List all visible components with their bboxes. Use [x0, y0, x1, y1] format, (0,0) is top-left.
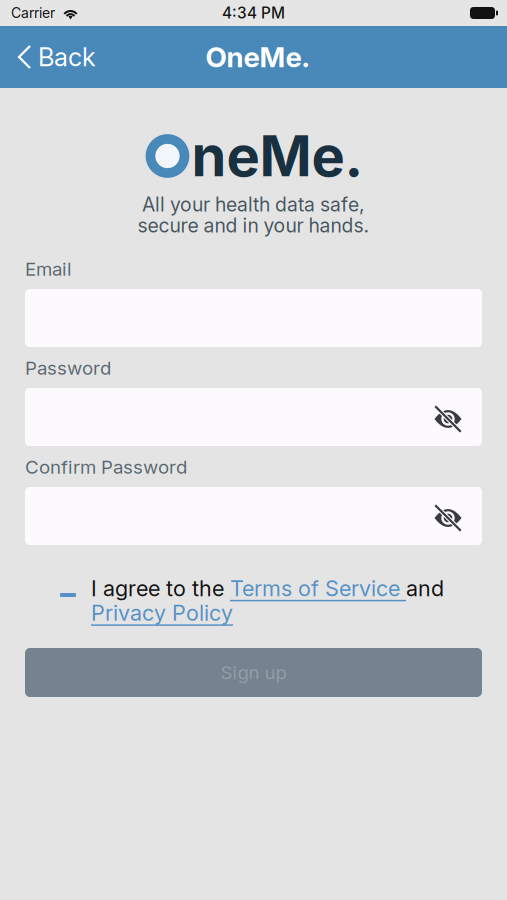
staticText: Back [38, 42, 96, 72]
button[interactable]: Sign up [25, 648, 482, 697]
button[interactable]: Back [0, 26, 110, 88]
button[interactable]: Terms of Service [230, 575, 406, 601]
staticText: OneMe. [205, 40, 309, 74]
staticText: Terms of Service [230, 575, 406, 601]
button[interactable]: Show password [422, 388, 482, 446]
staticText: 4:34 PM [222, 4, 285, 22]
staticText: Password [25, 357, 111, 379]
button[interactable]: Show password [422, 487, 482, 545]
staticText: I agree to the [91, 575, 230, 601]
staticText: Email [25, 258, 72, 280]
staticText: Confirm Password [25, 456, 187, 478]
button[interactable]: Privacy Policy [91, 601, 233, 625]
staticText: All your health data safe, [142, 193, 365, 216]
staticText: secure and in your hands. [137, 214, 369, 237]
staticText: and [406, 575, 444, 601]
button[interactable]: Agree to terms [25, 576, 91, 614]
staticText: Carrier [11, 4, 55, 21]
staticText: Sign up [220, 661, 286, 684]
staticText: neMe. [191, 122, 363, 190]
staticText: Privacy Policy [91, 600, 233, 626]
